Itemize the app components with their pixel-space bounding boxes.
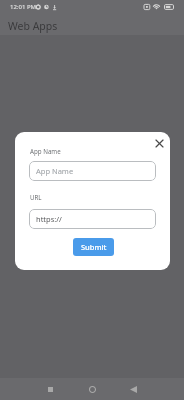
staticText: Submit — [81, 242, 107, 252]
button[interactable]: Close dialog — [149, 133, 170, 154]
button[interactable]: Home — [82, 379, 102, 399]
button[interactable]: Recent apps — [40, 379, 60, 399]
staticText: App Name — [30, 147, 61, 155]
button[interactable]: https:// — [29, 209, 156, 229]
button[interactable]: App Name — [29, 161, 156, 181]
staticText: 12:01 PM — [10, 3, 37, 11]
staticText: URL — [30, 193, 42, 201]
button[interactable]: Back — [123, 379, 143, 399]
staticText: Web Apps — [8, 19, 58, 33]
staticText: https:// — [36, 214, 62, 224]
staticText: App Name — [36, 166, 74, 176]
button[interactable]: Submit — [73, 238, 114, 256]
